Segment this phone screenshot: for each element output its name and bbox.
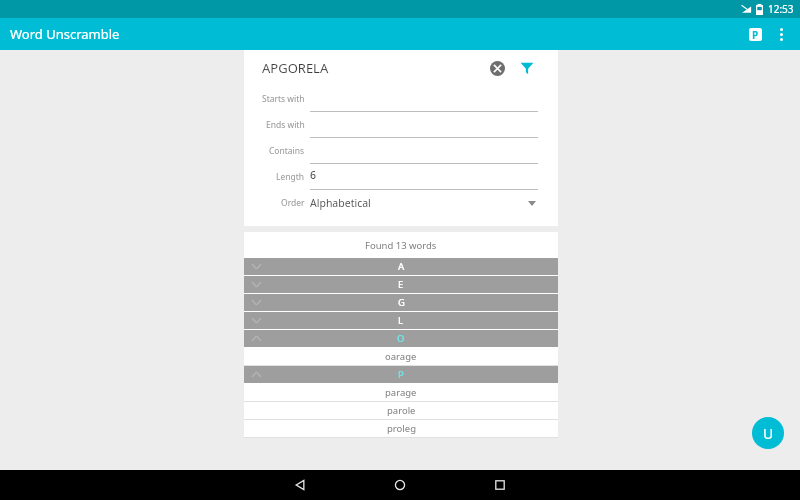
staticText: parage	[385, 386, 417, 399]
button[interactable]: G	[244, 294, 558, 311]
button[interactable]: Unscramble	[752, 417, 784, 449]
button[interactable]: Filter	[516, 57, 538, 79]
staticText: parole	[387, 404, 416, 417]
staticText: G	[398, 296, 405, 309]
staticText: Starts with	[262, 93, 305, 105]
button[interactable]: Home	[374, 470, 426, 500]
staticText: A	[398, 260, 405, 273]
button[interactable]: P	[244, 366, 558, 383]
staticText: L	[398, 314, 404, 327]
button[interactable]: Dictionary source	[742, 21, 768, 47]
button[interactable]	[310, 112, 538, 138]
button[interactable]: parole	[244, 402, 558, 419]
button[interactable]: Recent apps	[474, 470, 526, 500]
staticText: 6	[310, 168, 317, 182]
staticText: P	[398, 368, 404, 381]
button[interactable]: oarage	[244, 348, 558, 365]
staticText: E	[398, 278, 404, 291]
staticText: O	[397, 332, 405, 345]
staticText: Alphabetical	[310, 196, 371, 210]
staticText: U	[763, 424, 774, 443]
button[interactable]: O	[244, 330, 558, 347]
staticText: Length	[276, 171, 305, 183]
staticText: 12:53	[768, 2, 794, 16]
staticText: P	[752, 28, 759, 41]
button[interactable]: E	[244, 276, 558, 293]
staticText: proleg	[387, 422, 416, 435]
button[interactable]: parage	[244, 384, 558, 401]
staticText: Ends with	[266, 119, 305, 131]
button[interactable]: More options	[768, 21, 794, 47]
button[interactable]: L	[244, 312, 558, 329]
button[interactable]: proleg	[244, 420, 558, 437]
button[interactable]: Back	[274, 470, 326, 500]
button[interactable]: Order	[244, 190, 558, 216]
staticText: APGORELA	[262, 59, 329, 77]
button[interactable]	[310, 138, 538, 164]
staticText: Contains	[269, 145, 305, 157]
staticText: Order	[281, 197, 305, 209]
button[interactable]: 6	[310, 164, 538, 190]
button[interactable]	[310, 86, 538, 112]
staticText: Word Unscramble	[10, 25, 120, 43]
button[interactable]: Clear	[486, 57, 508, 79]
button[interactable]: A	[244, 258, 558, 275]
staticText: oarage	[385, 350, 417, 363]
staticText: Found 13 words	[365, 239, 437, 252]
